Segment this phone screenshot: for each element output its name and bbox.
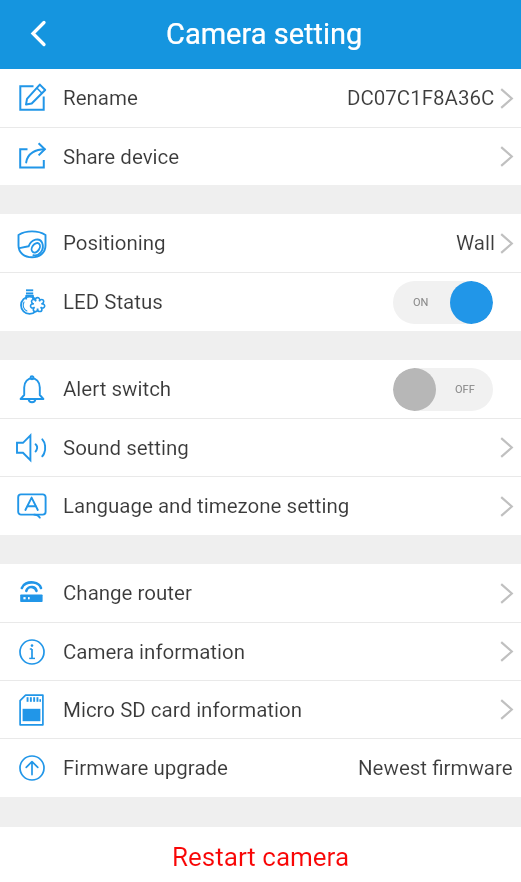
staticText: Wall bbox=[456, 231, 495, 255]
staticText: Firmware upgrade bbox=[63, 756, 228, 780]
staticText: Sound setting bbox=[63, 436, 189, 460]
button[interactable]: Micro SD card information bbox=[0, 681, 521, 738]
button[interactable]: Firmware upgrade bbox=[0, 739, 521, 797]
staticText: Newest firmware bbox=[358, 756, 513, 780]
staticText: Positioning bbox=[63, 231, 166, 255]
button[interactable]: Positioning bbox=[0, 214, 521, 272]
staticText: Camera information bbox=[63, 640, 246, 664]
staticText: ON bbox=[413, 296, 429, 309]
staticText: Rename bbox=[63, 86, 138, 110]
staticText: OFF bbox=[455, 383, 475, 396]
button[interactable]: Change router bbox=[0, 564, 521, 622]
staticText: Change router bbox=[63, 581, 192, 605]
staticText: DC07C1F8A36C bbox=[347, 86, 495, 110]
button[interactable]: LED Status on bbox=[393, 281, 493, 324]
staticText: Camera setting bbox=[166, 17, 363, 51]
staticText: Language and timezone setting bbox=[63, 494, 350, 518]
button[interactable]: LED Status bbox=[0, 273, 521, 331]
button[interactable]: Restart camera bbox=[0, 827, 521, 882]
button[interactable]: Alert switch bbox=[0, 360, 521, 418]
button[interactable]: Rename bbox=[0, 69, 521, 127]
button[interactable]: Sound setting bbox=[0, 419, 521, 476]
button[interactable]: Language and timezone setting bbox=[0, 477, 521, 535]
staticText: Micro SD card information bbox=[63, 698, 303, 722]
button[interactable]: Alert switch off bbox=[393, 368, 493, 411]
staticText: Alert switch bbox=[63, 377, 172, 401]
button[interactable]: Camera information bbox=[0, 623, 521, 680]
button[interactable]: Share device bbox=[0, 128, 521, 185]
staticText: Restart camera bbox=[172, 842, 350, 872]
button[interactable]: Back bbox=[14, 11, 62, 59]
staticText: Share device bbox=[63, 145, 180, 169]
staticText: LED Status bbox=[63, 290, 163, 314]
